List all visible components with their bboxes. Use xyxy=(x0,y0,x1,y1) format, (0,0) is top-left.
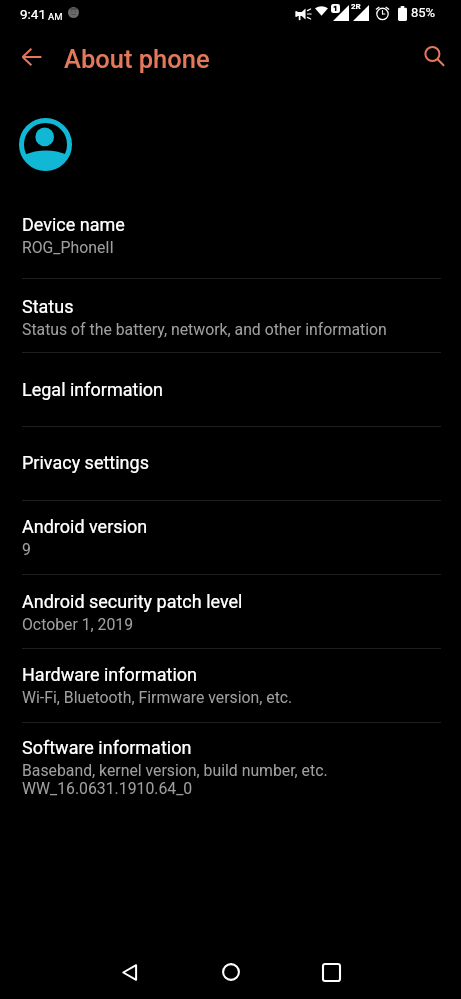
staticText: ROG_PhoneII xyxy=(22,239,114,257)
button[interactable]: Hardware information xyxy=(0,649,461,722)
button[interactable]: Android security patch level xyxy=(0,575,461,648)
button[interactable]: Android version xyxy=(0,501,461,574)
staticText: Android security patch level xyxy=(22,591,243,612)
button[interactable]: Home xyxy=(207,948,255,996)
staticText: Hardware information xyxy=(22,664,197,685)
staticText: Software information xyxy=(22,737,192,758)
button[interactable]: Search xyxy=(411,33,458,80)
staticText: AM xyxy=(48,11,63,22)
staticText: Baseband, kernel version, build number, … xyxy=(22,762,328,798)
staticText: Privacy settings xyxy=(22,452,149,473)
staticText: 9:41 xyxy=(20,6,47,22)
button[interactable]: Recent apps xyxy=(307,948,355,996)
staticText: 2R xyxy=(351,2,361,11)
staticText: Device name xyxy=(22,214,125,235)
button[interactable]: Legal information xyxy=(0,353,461,426)
button[interactable]: Navigate up xyxy=(8,33,55,80)
staticText: Status of the battery, network, and othe… xyxy=(22,321,387,339)
button[interactable]: Privacy settings xyxy=(0,427,461,500)
staticText: 9 xyxy=(22,541,31,559)
staticText: Wi-Fi, Bluetooth, Firmware version, etc. xyxy=(22,689,293,707)
staticText: 85% xyxy=(411,5,436,20)
staticText: Android version xyxy=(22,516,148,537)
button[interactable]: Back xyxy=(105,948,153,996)
staticText: October 1, 2019 xyxy=(22,616,134,634)
button[interactable]: Device name xyxy=(0,198,461,278)
staticText: Status xyxy=(22,296,74,317)
staticText: About phone xyxy=(64,44,210,74)
button[interactable]: Software information xyxy=(0,723,461,813)
staticText: Legal information xyxy=(22,379,163,400)
button[interactable]: Status xyxy=(0,279,461,352)
